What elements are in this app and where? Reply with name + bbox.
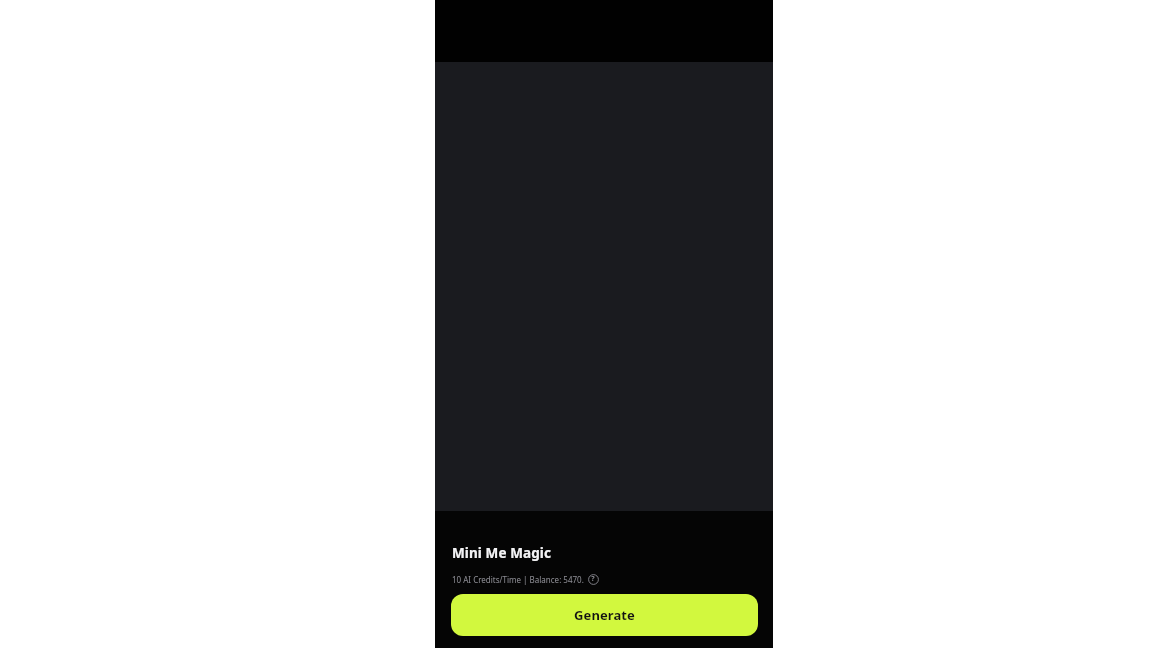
staticText: Generate bbox=[574, 606, 635, 624]
staticText: Mini Me Magic bbox=[452, 544, 552, 562]
staticText: 10 AI Credits/Time | Balance: 5470. bbox=[452, 574, 584, 585]
button[interactable]: Credits help bbox=[587, 573, 599, 585]
staticText: ? bbox=[591, 574, 595, 584]
button[interactable]: Generate bbox=[451, 594, 758, 636]
